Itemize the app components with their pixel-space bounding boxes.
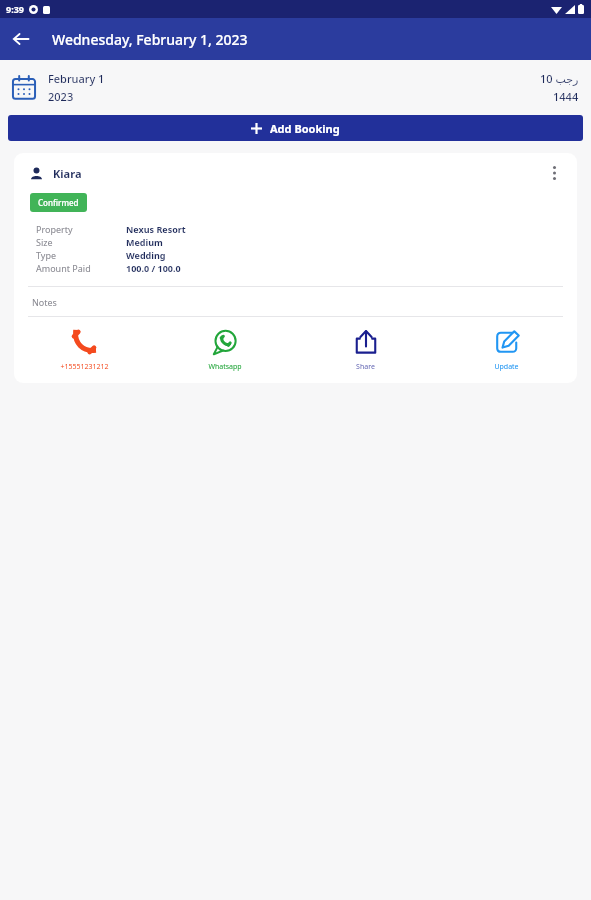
staticText: Nexus Resort — [126, 223, 186, 235]
staticText: Medium — [126, 236, 163, 248]
staticText: 2023 — [48, 89, 74, 104]
staticText: رجب 10 — [540, 71, 579, 86]
staticText: Wednesday, February 1, 2023 — [52, 30, 248, 49]
staticText: Share — [356, 362, 375, 372]
staticText: Notes — [32, 296, 57, 308]
staticText: Whatsapp — [208, 362, 242, 372]
button[interactable]: More options — [539, 158, 569, 188]
staticText: +15551231212 — [60, 362, 109, 372]
staticText: Update — [494, 362, 519, 372]
button[interactable]: Whatsapp — [154, 322, 295, 378]
staticText: Wedding — [126, 249, 166, 261]
button[interactable]: Call — [14, 322, 154, 378]
staticText: Type — [36, 249, 57, 261]
staticText: Kiara — [53, 166, 82, 181]
staticText: Add Booking — [270, 121, 340, 136]
staticText: 1444 — [553, 89, 579, 104]
staticText: Property — [36, 223, 73, 235]
staticText: 100.0 / 100.0 — [126, 262, 181, 274]
button[interactable]: Share — [295, 322, 436, 378]
staticText: Size — [36, 236, 53, 248]
button[interactable]: Update — [436, 322, 577, 378]
button[interactable]: Add Booking — [8, 115, 583, 141]
staticText: Confirmed — [38, 197, 79, 208]
staticText: February 1 — [48, 71, 105, 86]
staticText: Amount Paid — [36, 262, 91, 274]
staticText: 9:39 — [6, 3, 24, 15]
button[interactable]: Back — [0, 18, 42, 60]
